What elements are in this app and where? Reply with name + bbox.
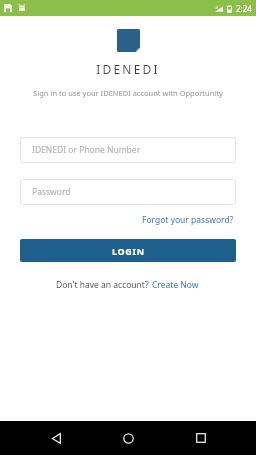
staticText: 2:24 bbox=[236, 3, 252, 14]
staticText: LOGIN bbox=[112, 245, 145, 257]
button[interactable]: IDENEDI or Phone Number bbox=[20, 137, 236, 163]
staticText: Password bbox=[32, 186, 71, 198]
button[interactable]: LOGIN bbox=[20, 239, 236, 262]
button[interactable]: Recent apps bbox=[184, 421, 218, 455]
staticText: Don't have an account? bbox=[56, 279, 151, 291]
button[interactable]: Password bbox=[20, 179, 236, 205]
staticText: Sign in to use your IDENEDI account with… bbox=[10, 88, 246, 98]
button[interactable]: Create Now bbox=[151, 277, 200, 293]
staticText: IDENEDI or Phone Number bbox=[32, 144, 141, 156]
staticText: Create Now bbox=[152, 279, 199, 291]
staticText: Forgot your password? bbox=[142, 214, 234, 226]
button[interactable]: Forgot your password? bbox=[140, 211, 236, 229]
button[interactable]: Home bbox=[111, 421, 145, 455]
staticText: IDENEDI bbox=[0, 61, 256, 77]
button[interactable]: Back bbox=[39, 421, 73, 455]
